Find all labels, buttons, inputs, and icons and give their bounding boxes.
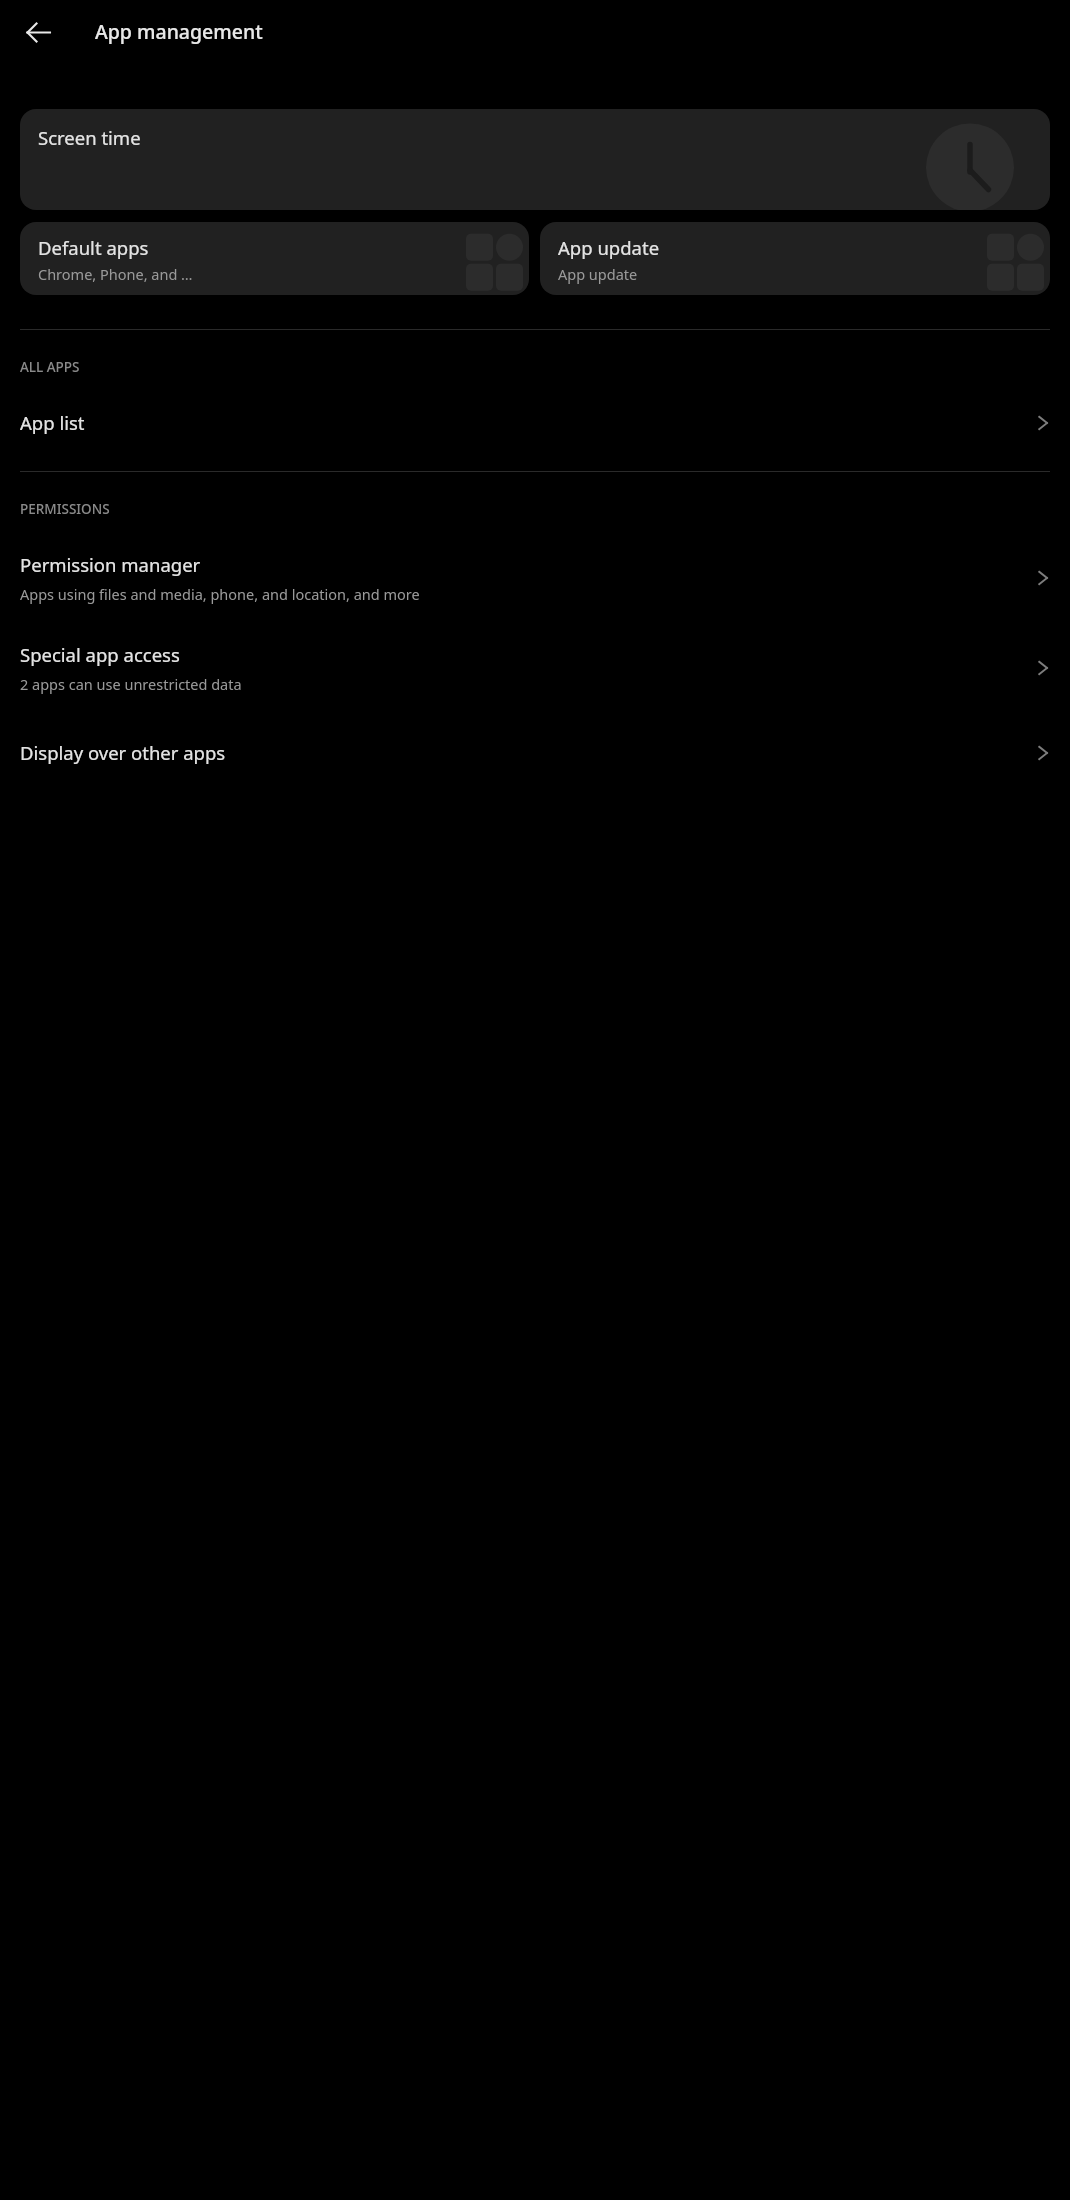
button[interactable]: Special app access [0, 628, 1070, 708]
button[interactable]: App list [0, 396, 1070, 449]
staticText: ALL APPS [20, 358, 80, 376]
staticText: Chrome, Phone, and … [38, 264, 193, 284]
staticText: PERMISSIONS [20, 500, 110, 518]
button[interactable]: Screen time [20, 109, 1050, 210]
staticText: 2 apps can use unrestricted data [20, 674, 242, 694]
staticText: Apps using files and media, phone, and l… [20, 584, 420, 604]
staticText: App list [20, 410, 85, 435]
staticText: Screen time [38, 125, 141, 150]
button[interactable]: Back [12, 6, 64, 58]
staticText: Default apps [38, 235, 149, 260]
staticText: Special app access [20, 642, 180, 667]
staticText: App management [95, 18, 263, 45]
staticText: App update [558, 235, 660, 260]
button[interactable]: App update [540, 222, 1050, 295]
button[interactable]: Permission manager [0, 538, 1070, 618]
staticText: App update [558, 264, 638, 284]
staticText: Display over other apps [20, 740, 226, 765]
staticText: Permission manager [20, 552, 201, 577]
button[interactable]: Display over other apps [0, 726, 1070, 779]
button[interactable]: Default apps [20, 222, 529, 295]
